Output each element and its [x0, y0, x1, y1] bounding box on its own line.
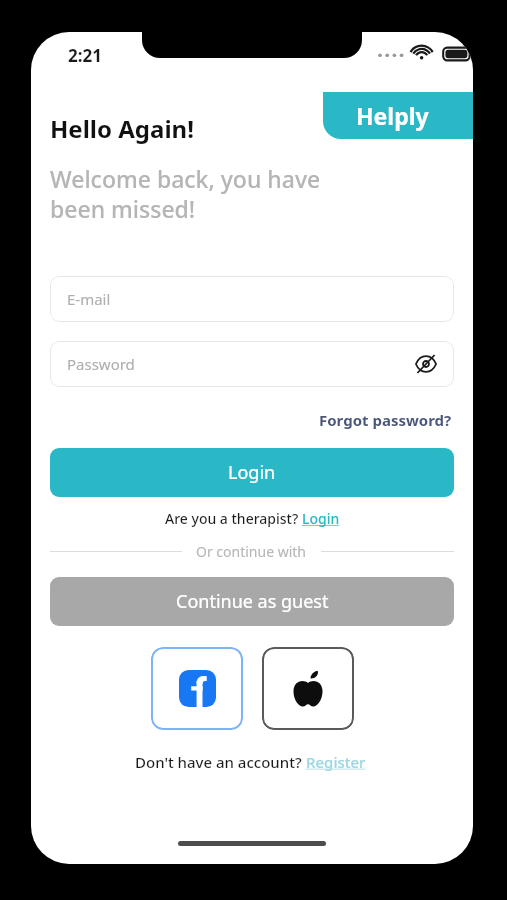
- button[interactable]: Continue with Facebook: [151, 647, 243, 730]
- staticText: Don't have an account?: [135, 752, 306, 772]
- staticText: Forgot password?: [319, 410, 452, 430]
- button[interactable]: Continue with Apple: [262, 647, 354, 730]
- button[interactable]: Forgot password?: [317, 407, 454, 433]
- staticText: Register: [306, 752, 370, 772]
- staticText: Password: [67, 354, 135, 374]
- staticText: Welcome back, you have been missed!: [50, 163, 321, 225]
- button[interactable]: Register: [306, 752, 370, 772]
- staticText: Login: [228, 460, 276, 485]
- staticText: Login: [302, 509, 340, 528]
- button[interactable]: Show password: [412, 350, 440, 378]
- staticText: E-mail: [67, 289, 111, 309]
- button[interactable]: Continue as guest: [50, 577, 454, 626]
- button[interactable]: E-mail: [50, 276, 454, 322]
- staticText: Helply: [356, 100, 429, 131]
- button[interactable]: Helply: [323, 92, 473, 139]
- staticText: Or continue with: [196, 542, 307, 561]
- staticText: Are you a therapist?: [165, 509, 302, 528]
- staticText: Continue as guest: [176, 589, 329, 614]
- button[interactable]: Login: [50, 448, 454, 497]
- staticText: Hello Again!: [50, 112, 194, 145]
- button[interactable]: Password: [50, 341, 454, 387]
- staticText: 2:21: [68, 44, 102, 67]
- button[interactable]: Login: [302, 509, 340, 528]
